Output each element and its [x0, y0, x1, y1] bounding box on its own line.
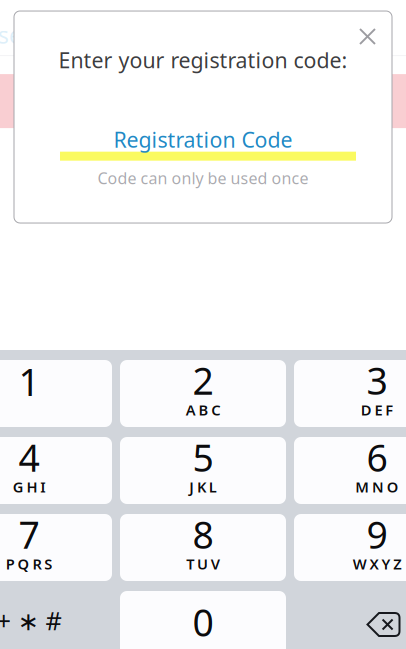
button[interactable]: 7 [0, 514, 112, 581]
button[interactable]: Delete [294, 591, 406, 649]
staticText: 0 [192, 597, 213, 647]
staticText: 9 [366, 509, 387, 559]
staticText: + ∗ # [0, 604, 61, 637]
button[interactable]: 9 [294, 514, 406, 581]
staticText: se [0, 20, 22, 50]
staticText: 3 [366, 355, 387, 405]
staticText: 7 [18, 509, 39, 559]
staticText: MNO [355, 477, 399, 496]
staticText: 1 [18, 357, 39, 406]
button[interactable]: 4 [0, 437, 112, 504]
button[interactable]: Registration Code [50, 127, 356, 159]
button[interactable]: 8 [120, 514, 286, 581]
button[interactable]: Close [346, 11, 392, 50]
staticText: 6 [366, 432, 387, 482]
button[interactable]: 1 [0, 360, 112, 427]
staticText: GHI [13, 477, 45, 496]
staticText: JKL [189, 477, 217, 496]
staticText: TUV [186, 554, 220, 573]
staticText: ABC [186, 400, 220, 419]
staticText: 2 [192, 355, 213, 405]
staticText: Code can only be used once [97, 167, 308, 189]
button[interactable]: 6 [294, 437, 406, 504]
button[interactable]: 2 [120, 360, 286, 427]
staticText: Registration Code [113, 125, 292, 154]
staticText: 4 [18, 432, 39, 482]
button[interactable]: 5 [120, 437, 286, 504]
staticText: 5 [192, 432, 213, 482]
staticText: DEF [361, 400, 393, 419]
button[interactable]: 3 [294, 360, 406, 427]
staticText: 8 [192, 509, 213, 559]
staticText: Enter your registration code: [58, 46, 347, 74]
staticText: WXYZ [353, 554, 401, 573]
button[interactable]: Symbols [0, 591, 112, 649]
button[interactable]: 0 [120, 591, 286, 649]
staticText: PQRS [6, 554, 52, 573]
